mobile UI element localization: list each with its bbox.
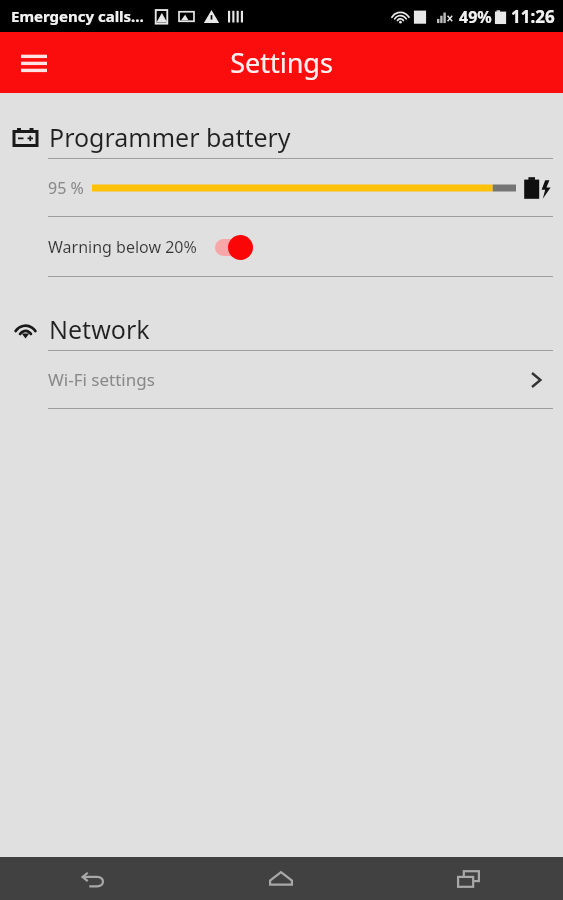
- staticText: Network: [49, 312, 150, 346]
- button[interactable]: Open navigation menu: [10, 39, 58, 87]
- staticText: 95 %: [48, 177, 84, 199]
- staticText: Programmer battery: [49, 120, 291, 154]
- button[interactable]: Wi-Fi settings: [0, 351, 563, 408]
- button[interactable]: Warning below 20%: [0, 217, 563, 276]
- button[interactable]: Home: [187, 857, 375, 900]
- button[interactable]: Back: [0, 857, 187, 900]
- staticText: Settings: [230, 44, 333, 81]
- button[interactable]: Recent apps: [375, 857, 563, 900]
- staticText: Emergency calls…: [11, 6, 144, 26]
- staticText: Wi-Fi settings: [48, 368, 155, 391]
- staticText: 49%: [459, 6, 492, 28]
- staticText: Warning below 20%: [48, 236, 197, 258]
- staticText: 11:26: [511, 5, 555, 28]
